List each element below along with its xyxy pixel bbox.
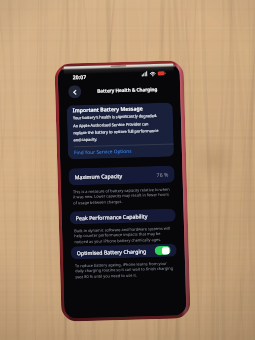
staticText: Your battery's health is significantly d… [73,113,159,142]
staticText: 20:07 [73,73,87,80]
staticText: This is a measure of battery capacity re… [73,187,170,206]
button[interactable]: Back [68,85,81,98]
staticText: 76 % [156,171,169,178]
staticText: To reduce battery ageing, iPhone learns … [75,261,173,280]
staticText: Maximum Capacity [74,172,123,180]
staticText: Built-in dynamic software and hardware s… [74,226,170,245]
staticText: Important Battery Message [73,104,143,113]
button[interactable]: Maximum Capacity [68,165,175,185]
button[interactable]: Peak Performance Capability [70,208,176,224]
button[interactable]: Optimised Battery Charging toggle [155,246,171,255]
button[interactable]: Important Battery Message [67,103,174,159]
staticText: Battery Health & Charging [97,86,158,94]
staticText: Optimised Battery Charging [77,247,147,256]
button[interactable]: Optimised Battery Charging [70,243,177,259]
staticText: Peak Performance Capability [76,212,148,221]
staticText: Find Your Service Options [74,148,132,156]
